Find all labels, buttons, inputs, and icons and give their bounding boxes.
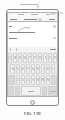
staticText: B: [37, 78, 39, 82]
button[interactable]: Return: [48, 86, 57, 96]
button[interactable]: Y: [33, 53, 37, 63]
button[interactable]: Cancel: [9, 18, 18, 21]
staticText: X: [22, 78, 24, 82]
button[interactable]: L: [51, 64, 55, 74]
button[interactable]: U: [38, 53, 42, 63]
button[interactable]: V: [31, 75, 35, 85]
button[interactable]: O: [48, 53, 52, 63]
staticText: W: [14, 56, 17, 60]
button[interactable]: B: [36, 75, 40, 85]
button[interactable]: Recipient field: [7, 30, 58, 35]
staticText: N: [42, 78, 44, 82]
staticText: P: [54, 56, 56, 60]
staticText: Q: [9, 56, 12, 60]
button[interactable]: C: [26, 75, 30, 85]
staticText: T: [29, 56, 31, 60]
button[interactable]: Home: [30, 100, 35, 105]
staticText: F: [27, 67, 29, 71]
staticText: D: [22, 67, 24, 71]
button[interactable]: Recipient field: [7, 35, 58, 41]
staticText: G: [32, 67, 34, 71]
button[interactable]: Q: [8, 53, 12, 63]
staticText: Z: [17, 78, 19, 82]
staticText: U: [39, 56, 41, 60]
button[interactable]: Space: [21, 86, 41, 96]
staticText: FIG. 11B: [24, 111, 41, 117]
button[interactable]: I: [43, 53, 47, 63]
button[interactable]: D: [21, 64, 25, 74]
button[interactable]: N: [41, 75, 45, 85]
staticText: I: [45, 56, 46, 60]
button[interactable]: X: [21, 75, 25, 85]
button[interactable]: G: [31, 64, 35, 74]
button[interactable]: Send: [48, 18, 56, 21]
button[interactable]: W: [13, 53, 17, 63]
button[interactable]: M: [46, 75, 50, 85]
button[interactable]: H: [36, 64, 40, 74]
staticText: S: [17, 67, 19, 71]
staticText: V: [32, 78, 34, 82]
button[interactable]: S: [16, 64, 20, 74]
button[interactable]: F: [26, 64, 30, 74]
button[interactable]: Next field: [15, 48, 18, 51]
staticText: R: [24, 56, 26, 60]
button[interactable]: K: [46, 64, 50, 74]
staticText: M: [47, 78, 50, 82]
button[interactable]: A: [10, 64, 15, 74]
button[interactable]: Previous field: [9, 48, 12, 51]
staticText: E: [19, 56, 21, 60]
button[interactable]: R: [23, 53, 27, 63]
staticText: K: [47, 67, 49, 71]
button[interactable]: Z: [16, 75, 20, 85]
button[interactable]: P: [53, 53, 57, 63]
staticText: L: [52, 67, 54, 71]
button[interactable]: Recipient field: [7, 22, 58, 30]
button[interactable]: J: [41, 64, 45, 74]
button[interactable]: T: [28, 53, 32, 63]
staticText: H: [37, 67, 39, 71]
button[interactable]: E: [18, 53, 22, 63]
staticText: O: [49, 56, 52, 60]
staticText: C: [27, 78, 29, 82]
staticText: A: [12, 67, 14, 71]
staticText: Y: [34, 56, 36, 60]
